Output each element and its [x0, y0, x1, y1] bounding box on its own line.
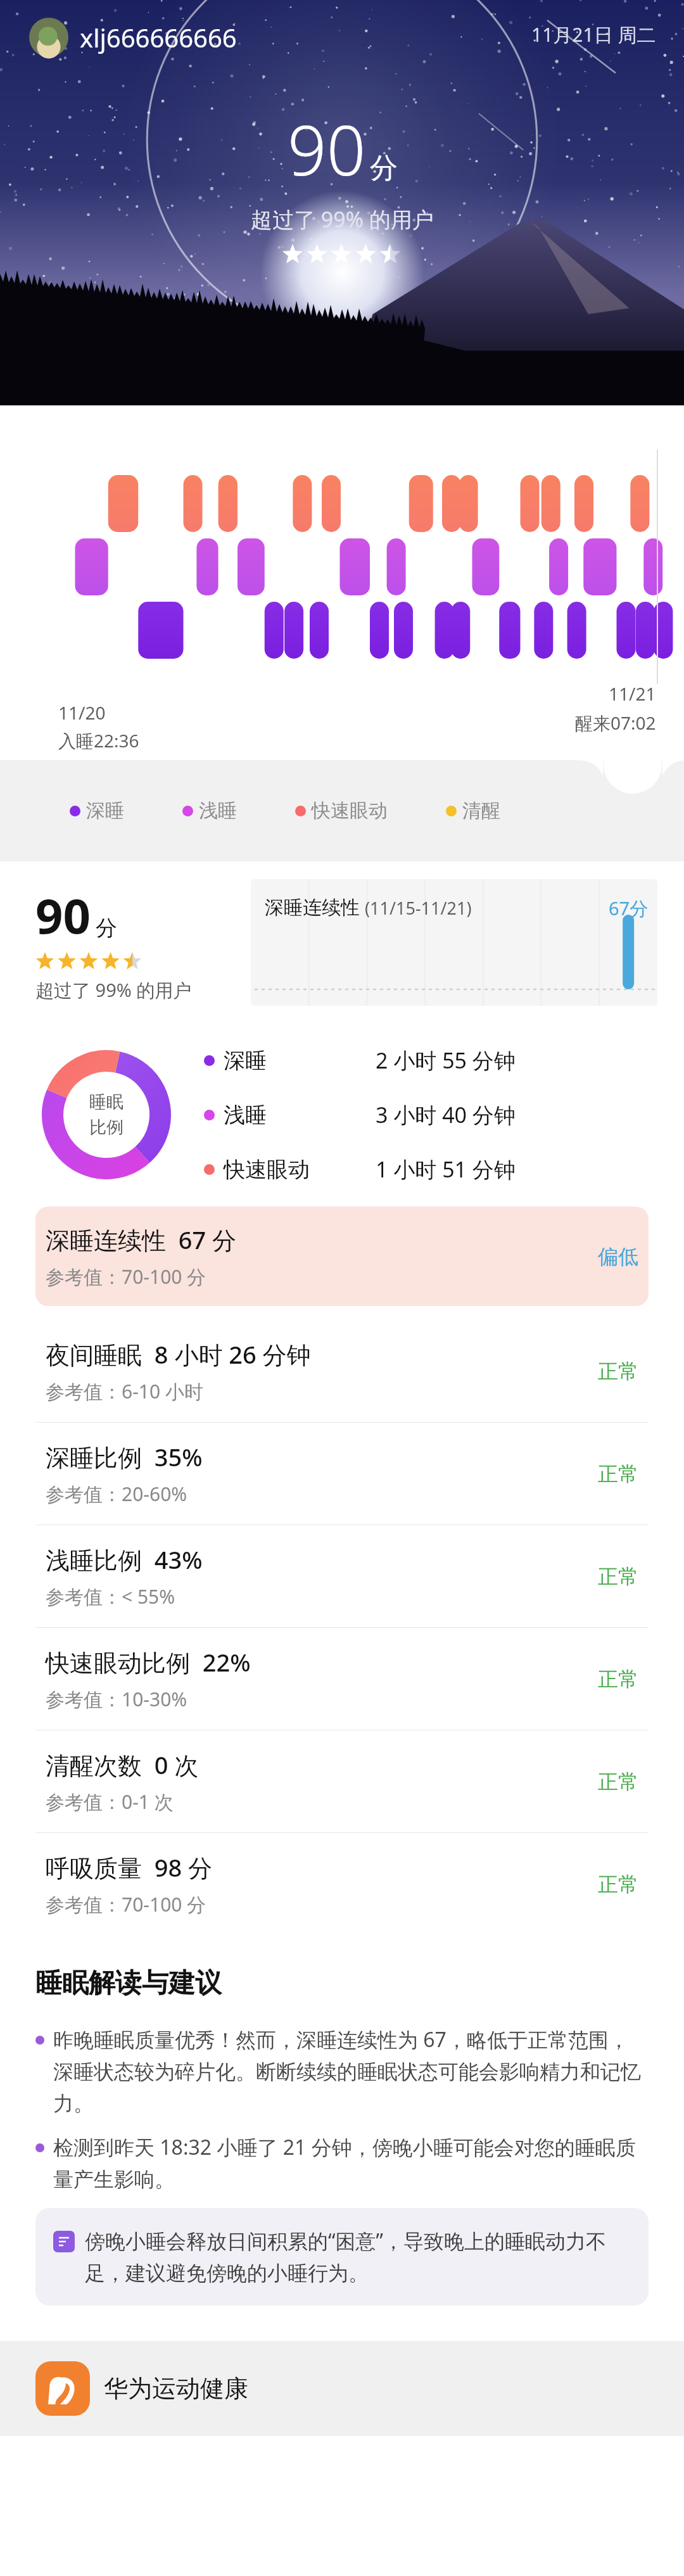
button[interactable]: 深睡连续性	[251, 879, 657, 1006]
staticText: 深睡连续性 67 分	[46, 1223, 237, 1256]
staticText: 正常	[598, 1461, 638, 1487]
other: 华为运动健康	[35, 2361, 90, 2416]
staticText: 11/21	[609, 682, 656, 706]
button[interactable]: 浅睡	[182, 799, 237, 823]
staticText: 偏低	[598, 1244, 638, 1269]
staticText: 清醒	[462, 799, 500, 823]
staticText: 检测到昨天 18:32 小睡了 21 分钟，傍晚小睡可能会对您的睡眠质量产生影响…	[53, 2133, 649, 2193]
staticText: 傍晚小睡会释放日间积累的“困意”，导致晚上的睡眠动力不足，建议避免傍晚的小睡行为…	[85, 2227, 631, 2287]
staticText: 67分	[609, 896, 649, 921]
button[interactable]: 深睡比例 35%	[35, 1423, 649, 1525]
button[interactable]: 快速眼动	[204, 1155, 659, 1184]
staticText: 深睡连续性	[265, 896, 360, 920]
button[interactable]: 11月21日 周二	[531, 22, 656, 48]
staticText: 快速眼动	[224, 1156, 310, 1183]
button[interactable]: 清醒次数 0 次	[35, 1730, 649, 1832]
staticText: 分	[370, 151, 398, 186]
staticText: 浅睡	[224, 1101, 267, 1129]
button[interactable]: 深睡	[204, 1046, 659, 1075]
staticText: 参考值：0-1 次	[46, 1789, 174, 1815]
staticText: 3 小时 40 分钟	[376, 1100, 516, 1129]
staticText: 夜间睡眠 8 小时 26 分钟	[46, 1338, 311, 1371]
staticText: 昨晚睡眠质量优秀！然而，深睡连续性为 67，略低于正常范围，深睡状态较为碎片化。…	[53, 2026, 649, 2117]
staticText: 清醒次数 0 次	[46, 1748, 199, 1781]
staticText: 2 小时 55 分钟	[376, 1046, 516, 1075]
staticText: 深睡比例 35%	[46, 1440, 203, 1473]
button[interactable]: 提示	[35, 2208, 649, 2306]
staticText: 浅睡比例 43%	[46, 1543, 203, 1576]
staticText: 超过了 99% 的用户	[251, 205, 434, 234]
staticText: 快速眼动比例 22%	[46, 1646, 251, 1678]
button[interactable]: 华为运动健康	[35, 2341, 684, 2436]
staticText: 1 小时 51 分钟	[376, 1155, 516, 1184]
staticText: 华为运动健康	[104, 2373, 248, 2404]
button[interactable]: 清醒	[446, 799, 500, 823]
staticText: 参考值：< 55%	[46, 1583, 175, 1609]
button[interactable]: 快速眼动比例 22%	[35, 1628, 649, 1730]
staticText: 超过了 99% 的用户	[35, 977, 192, 1003]
staticText: 深睡	[86, 799, 124, 823]
staticText: 睡眠解读与建议	[35, 1967, 222, 2000]
staticText: 参考值：20-60%	[46, 1481, 187, 1507]
staticText: 快速眼动	[312, 799, 388, 823]
staticText: 参考值：70-100 分	[46, 1264, 206, 1290]
staticText: 分	[96, 915, 117, 942]
button[interactable]: 深睡	[70, 799, 124, 823]
button[interactable]: 浅睡比例 43%	[35, 1525, 649, 1627]
staticText: 90	[288, 103, 366, 196]
staticText: 呼吸质量 98 分	[46, 1851, 213, 1884]
button[interactable]: 浅睡	[204, 1100, 659, 1129]
staticText: 90	[35, 882, 91, 948]
other: 提示	[53, 2231, 75, 2252]
staticText: 正常	[598, 1769, 638, 1794]
staticText: 11/20	[58, 701, 106, 725]
staticText: 正常	[598, 1872, 638, 1897]
button[interactable]: 深睡连续性 67 分	[35, 1207, 649, 1306]
staticText: 正常	[598, 1666, 638, 1692]
staticText: 醒来07:02	[575, 711, 656, 735]
button[interactable]: 快速眼动	[295, 799, 388, 823]
staticText: 参考值：10-30%	[46, 1686, 187, 1712]
staticText: 正常	[598, 1359, 638, 1384]
staticText: 11月21日 周二	[531, 22, 656, 48]
staticText: 浅睡	[199, 799, 237, 823]
button[interactable]: 呼吸质量 98 分	[35, 1833, 649, 1935]
staticText: (11/15-11/21)	[365, 896, 472, 920]
staticText: 入睡22:36	[58, 728, 139, 752]
staticText: xlj666666666	[80, 20, 237, 54]
staticText: 睡眠	[89, 1091, 123, 1113]
button[interactable]: xlj666666666	[29, 18, 237, 57]
staticText: 比例	[89, 1117, 123, 1138]
staticText: 正常	[598, 1564, 638, 1589]
staticText: 参考值：70-100 分	[46, 1891, 206, 1917]
button[interactable]: 夜间睡眠 8 小时 26 分钟	[35, 1320, 649, 1422]
staticText: 参考值：6-10 小时	[46, 1378, 203, 1404]
staticText: 深睡	[224, 1047, 267, 1074]
